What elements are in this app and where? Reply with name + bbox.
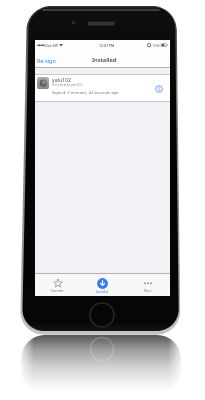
- staticText: Installed: [92, 56, 117, 64]
- staticText: 53%: [153, 43, 160, 48]
- button[interactable]: yalu102: [35, 74, 170, 102]
- button[interactable]: [155, 85, 163, 93]
- staticText: Signed: 3 minutes, 42 seconds ago: [52, 90, 119, 96]
- staticText: kim.crackclip.yalu102: [52, 83, 82, 87]
- button[interactable]: Installed: [80, 273, 125, 296]
- staticText: yalu102: [52, 76, 72, 83]
- staticText: Extender: [51, 289, 64, 293]
- staticText: Installed: [96, 290, 109, 294]
- staticText: Zain KW: [45, 43, 58, 48]
- button[interactable]: More: [125, 273, 170, 296]
- staticText: 12:07 PM: [99, 43, 115, 48]
- button[interactable]: Re-sign: [37, 57, 56, 64]
- staticText: More: [144, 289, 152, 293]
- staticText: Re-sign: [37, 57, 56, 64]
- button[interactable]: Extender: [35, 273, 80, 296]
